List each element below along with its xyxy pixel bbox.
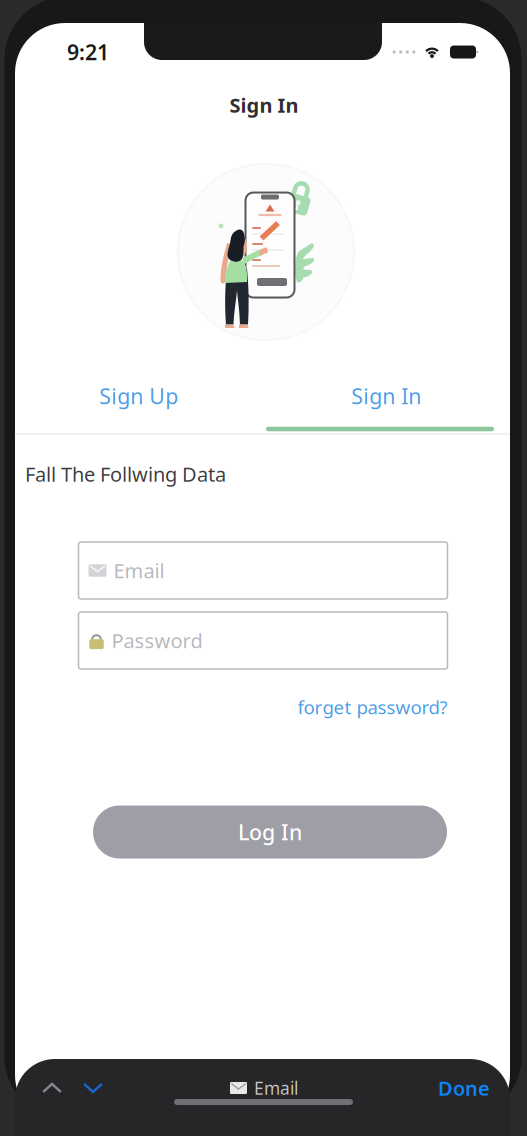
staticText: Done (438, 1075, 490, 1101)
button[interactable]: Sign In (262, 374, 510, 418)
staticText: Password (111, 627, 202, 654)
staticText: Sign In (229, 92, 298, 118)
staticText: 9:21 (67, 38, 109, 66)
staticText: Fall The Follwing Data (25, 461, 226, 487)
button[interactable]: Password (78, 612, 447, 669)
button[interactable]: Email (78, 542, 447, 599)
button[interactable]: Log In (93, 805, 447, 858)
button[interactable]: Sign Up (15, 374, 262, 418)
button[interactable]: Next field (83, 1083, 103, 1093)
staticText: Email (254, 1076, 298, 1099)
button[interactable]: Previous field (42, 1083, 62, 1093)
button[interactable]: forget password? (297, 695, 447, 719)
staticText: Email (113, 557, 164, 584)
staticText: forget password? (297, 695, 447, 719)
staticText: Sign In (351, 382, 421, 410)
staticText: Sign Up (99, 382, 178, 410)
staticText: Log In (238, 818, 302, 846)
button[interactable]: Done (438, 1075, 490, 1101)
